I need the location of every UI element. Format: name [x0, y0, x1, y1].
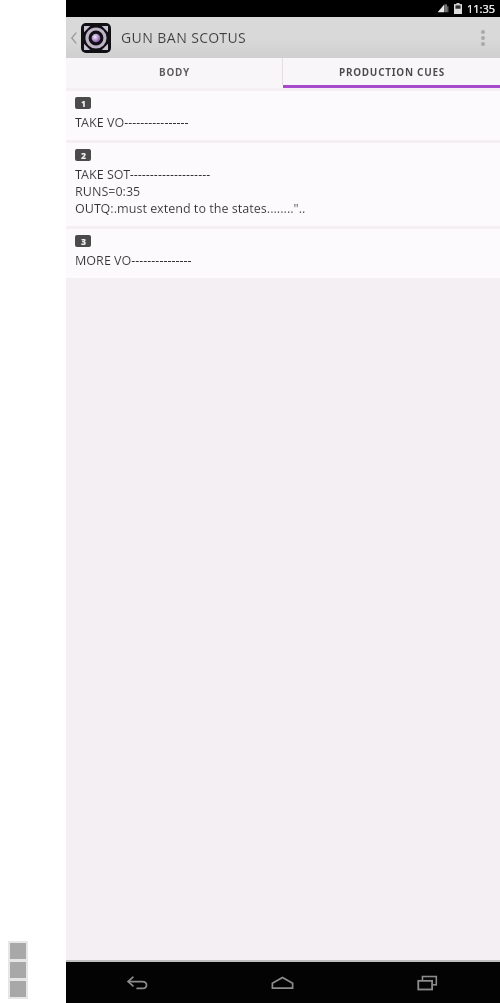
- button[interactable]: PRODUCTION CUES: [283, 58, 500, 85]
- staticText: RUNS=0:35: [75, 183, 141, 200]
- button[interactable]: BODY: [66, 58, 282, 85]
- staticText: MORE VO---------------: [75, 252, 192, 269]
- staticText: 1: [81, 98, 86, 109]
- staticText: TAKE SOT--------------------: [75, 166, 211, 183]
- staticText: 3: [81, 236, 86, 247]
- button[interactable]: 2: [66, 143, 500, 226]
- staticText: PRODUCTION CUES: [339, 65, 445, 79]
- button[interactable]: Back: [66, 962, 210, 1003]
- button[interactable]: Recent apps: [355, 962, 500, 1003]
- staticText: OUTQ:.must extend to the states........"…: [75, 200, 306, 217]
- button[interactable]: 3: [66, 229, 500, 278]
- staticText: BODY: [159, 65, 190, 79]
- staticText: 11:35: [467, 1, 496, 16]
- staticText: TAKE VO----------------: [75, 114, 189, 131]
- button[interactable]: Home: [210, 962, 355, 1003]
- staticText: GUN BAN SCOTUS: [121, 28, 247, 47]
- button[interactable]: More options: [466, 17, 500, 58]
- button[interactable]: 1: [66, 91, 500, 140]
- button[interactable]: Navigate up: [66, 19, 113, 57]
- staticText: 2: [81, 150, 86, 161]
